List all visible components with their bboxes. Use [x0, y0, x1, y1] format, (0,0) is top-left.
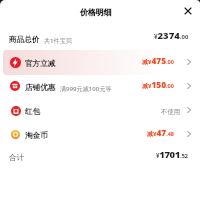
staticText: 官方立减: [25, 59, 56, 69]
other: Tao coins: [11, 130, 20, 139]
button[interactable]: 商品总价: [0, 26, 200, 50]
other: Red packet: [11, 106, 21, 116]
staticText: 红包: [25, 107, 41, 117]
staticText: 不使用: [161, 108, 181, 116]
button[interactable]: Tao coins: [0, 122, 200, 146]
button[interactable]: Close: [182, 5, 194, 17]
button[interactable]: Shop coupon: [0, 74, 200, 98]
button[interactable]: Red packet: [0, 98, 200, 122]
staticText: 淘金币: [25, 131, 48, 141]
button[interactable]: 合计: [0, 146, 200, 168]
staticText: 满999元减100元等: [60, 84, 112, 92]
staticText: 共1件宝贝: [44, 36, 72, 44]
staticText: ¥1701.52: [156, 148, 188, 161]
staticText: ¥2374.00: [154, 29, 189, 42]
staticText: 减¥475.00: [142, 55, 174, 66]
other: Shop coupon: [10, 81, 20, 91]
staticText: 价格明细: [80, 7, 112, 17]
staticText: 减¥150.00: [142, 79, 174, 90]
staticText: 店铺优惠: [25, 83, 56, 93]
staticText: 商品总价: [9, 35, 40, 45]
staticText: 减¥47.48: [147, 127, 174, 138]
staticText: 合计: [9, 153, 25, 163]
button[interactable]: Instant discount: [0, 50, 200, 74]
other: Instant discount: [10, 57, 21, 68]
